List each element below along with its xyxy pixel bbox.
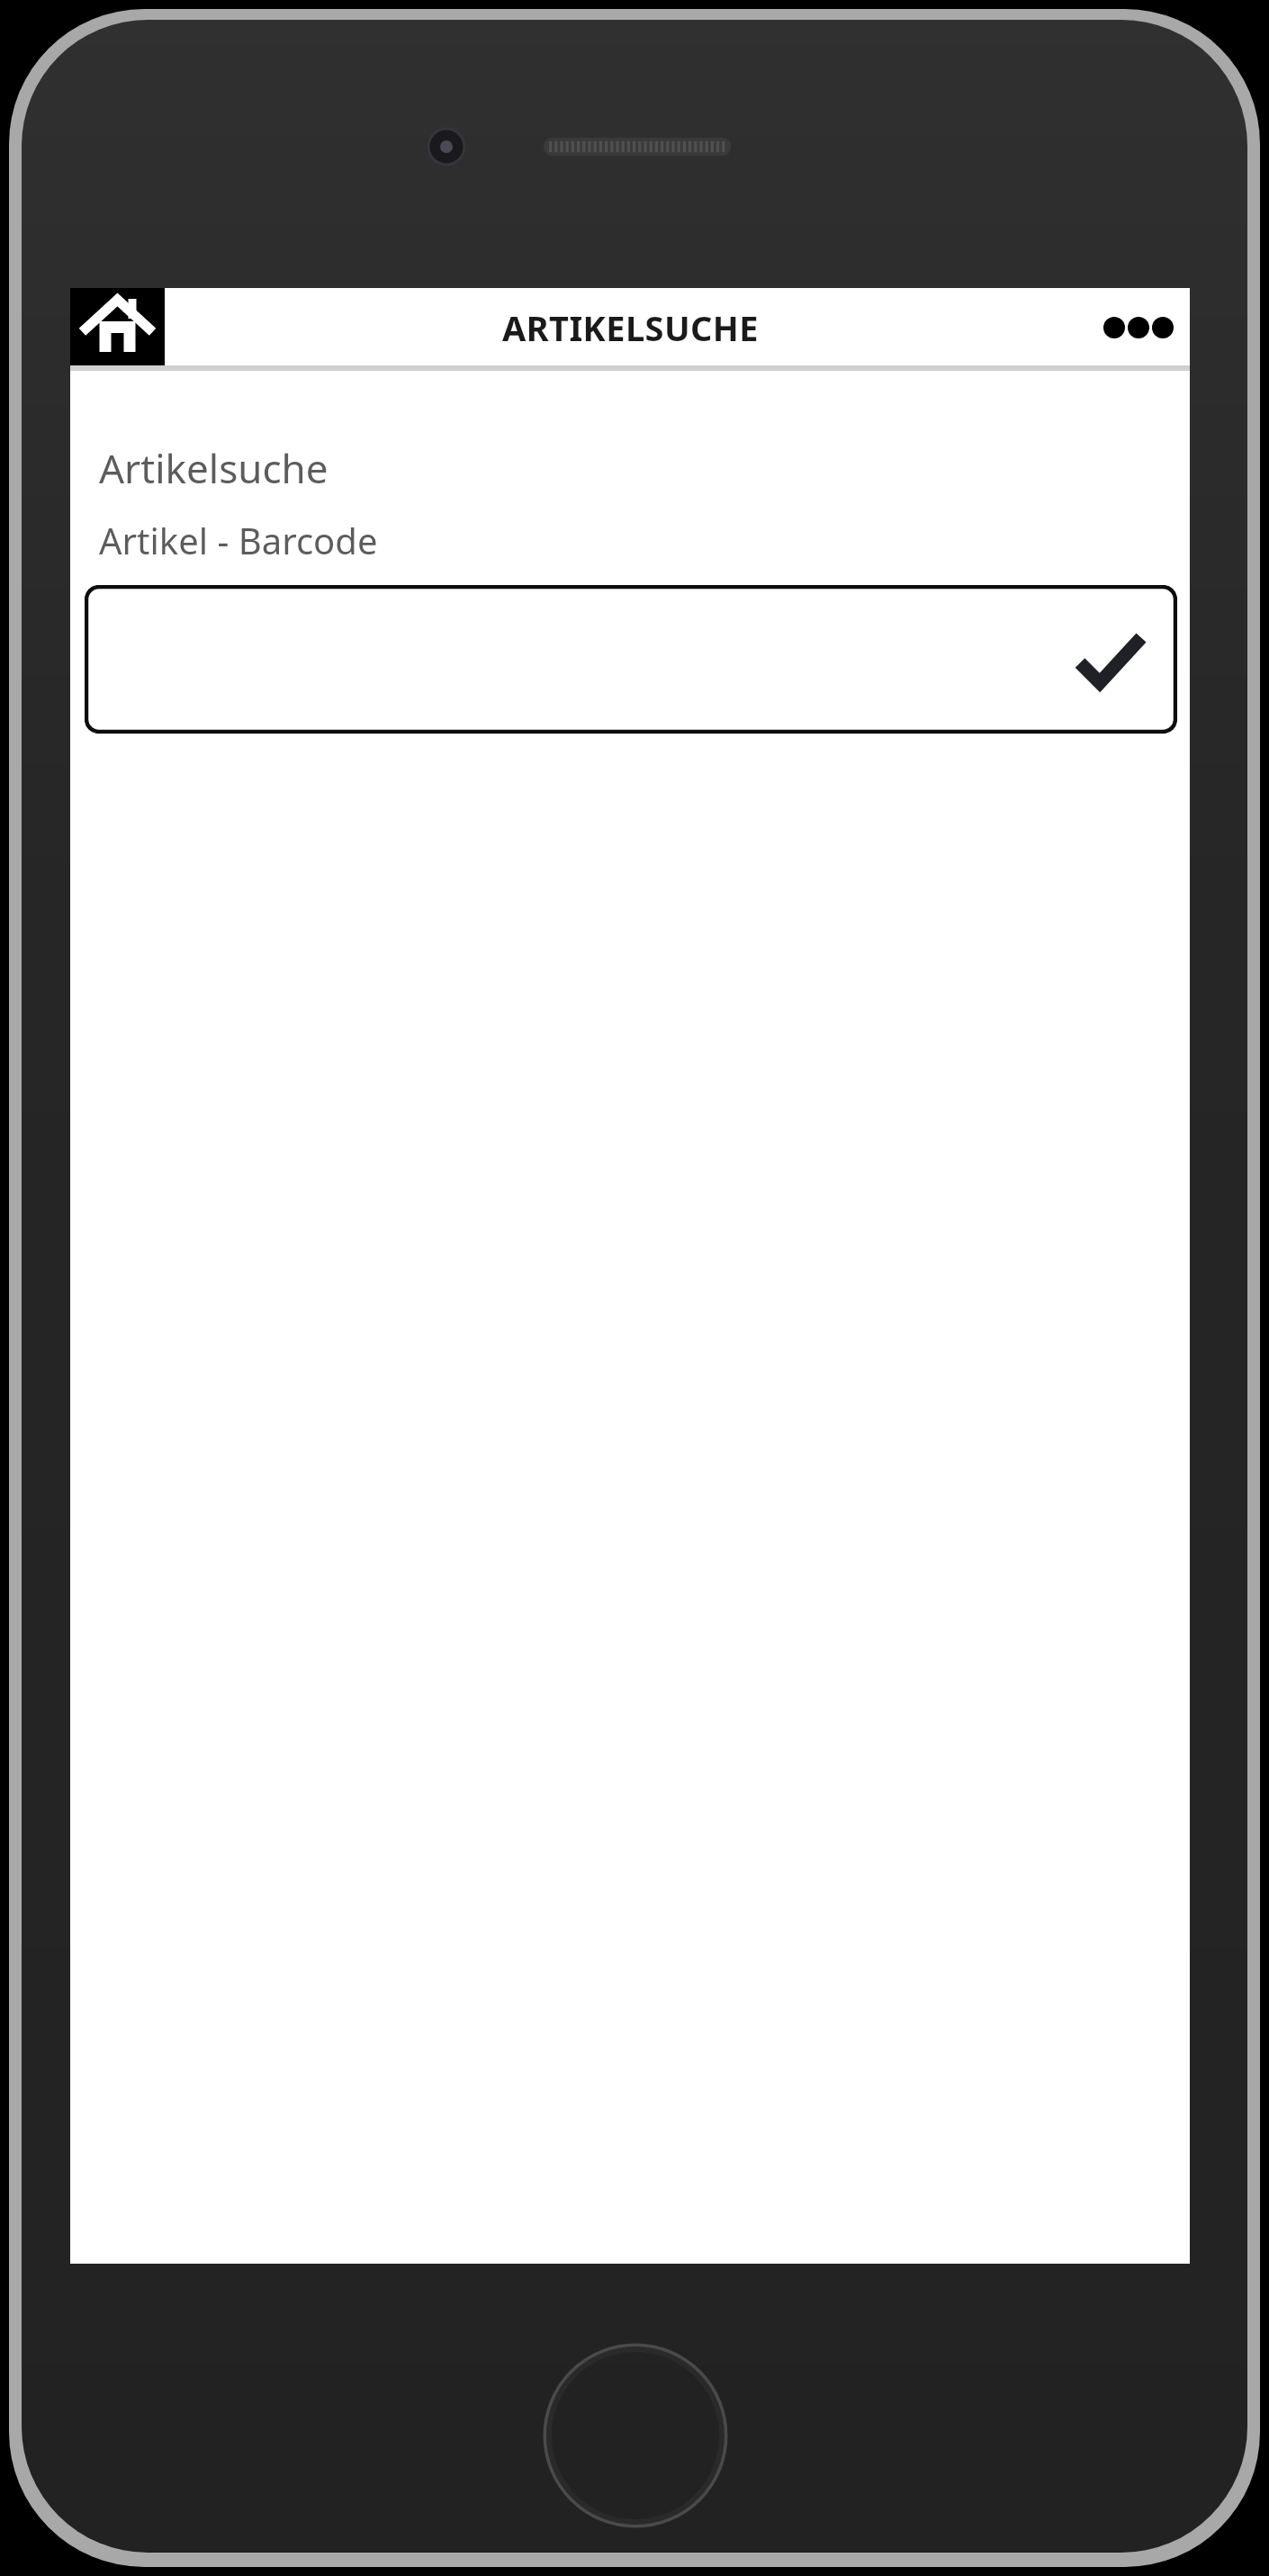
staticText: Artikelsuche <box>99 441 328 495</box>
button[interactable] <box>85 585 1177 734</box>
button[interactable]: More options <box>1082 288 1190 365</box>
staticText: Artikel - Barcode <box>99 516 378 564</box>
staticText: ARTIKELSUCHE <box>502 304 759 351</box>
button[interactable]: Home <box>70 288 165 365</box>
